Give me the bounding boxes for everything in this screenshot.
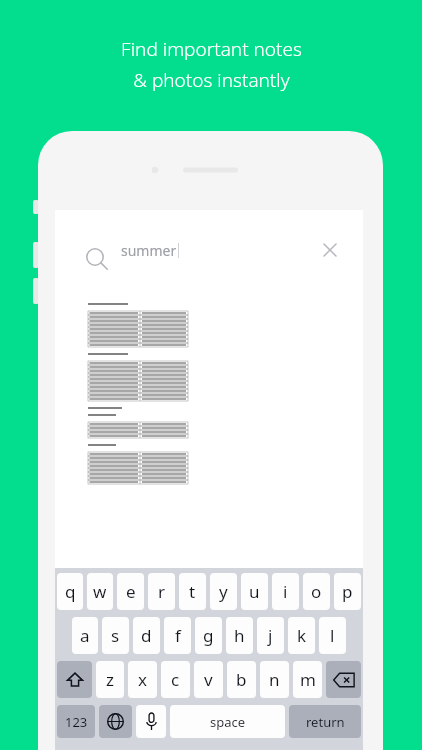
staticText: u <box>249 580 260 603</box>
button[interactable]: p <box>334 573 361 610</box>
button[interactable]: j <box>257 617 284 654</box>
button[interactable]: z <box>96 661 124 698</box>
staticText: b <box>236 668 247 691</box>
button[interactable]: w <box>87 573 113 610</box>
staticText: summer <box>121 241 177 260</box>
staticText: 123 <box>65 713 88 731</box>
staticText: space <box>210 713 246 731</box>
button[interactable]: x <box>128 661 157 698</box>
button[interactable]: Dictate <box>136 705 166 738</box>
button[interactable]: g <box>195 617 222 654</box>
button[interactable]: o <box>303 573 330 610</box>
button[interactable]: r <box>148 573 175 610</box>
button[interactable]: u <box>241 573 268 610</box>
staticText: k <box>297 624 307 647</box>
staticText: x <box>138 668 147 691</box>
button[interactable]: Delete <box>326 661 361 698</box>
staticText: i <box>283 580 288 603</box>
staticText: p <box>342 580 353 603</box>
button[interactable]: y <box>210 573 237 610</box>
button[interactable]: d <box>133 617 160 654</box>
button[interactable]: return <box>289 705 361 738</box>
staticText: f <box>175 624 181 647</box>
button[interactable]: Search <box>83 245 113 275</box>
button[interactable]: b <box>227 661 256 698</box>
staticText: h <box>234 624 245 647</box>
staticText: y <box>219 580 228 603</box>
button[interactable] <box>88 300 188 480</box>
staticText: v <box>204 668 213 691</box>
staticText: e <box>126 580 136 603</box>
staticText: w <box>93 580 107 603</box>
button[interactable]: space <box>170 705 285 738</box>
staticText: q <box>65 580 76 603</box>
staticText: & photos instantly <box>133 67 290 93</box>
staticText: c <box>171 668 180 691</box>
staticText: n <box>269 668 280 691</box>
button[interactable]: Shift <box>57 661 92 698</box>
button[interactable]: k <box>288 617 315 654</box>
staticText: return <box>306 713 345 731</box>
button[interactable]: i <box>272 573 299 610</box>
button[interactable]: 123 <box>57 705 95 738</box>
staticText: m <box>300 668 316 691</box>
button[interactable]: n <box>260 661 289 698</box>
button[interactable]: e <box>117 573 144 610</box>
button[interactable]: c <box>161 661 190 698</box>
staticText: g <box>203 624 214 647</box>
button[interactable]: Clear search <box>313 233 347 267</box>
staticText: Find important notes <box>121 36 302 62</box>
staticText: z <box>106 668 114 691</box>
button[interactable]: Change keyboard language <box>99 705 132 738</box>
staticText: l <box>330 624 335 647</box>
button[interactable]: t <box>179 573 206 610</box>
button[interactable]: l <box>319 617 346 654</box>
staticText: d <box>141 624 152 647</box>
button[interactable]: s <box>102 617 129 654</box>
staticText: o <box>311 580 322 603</box>
button[interactable]: m <box>293 661 322 698</box>
staticText: t <box>189 580 196 603</box>
button[interactable]: a <box>72 617 98 654</box>
staticText: r <box>158 580 166 603</box>
button[interactable]: v <box>194 661 223 698</box>
button[interactable]: q <box>57 573 83 610</box>
staticText: s <box>111 624 120 647</box>
staticText: a <box>80 624 90 647</box>
button[interactable]: h <box>226 617 253 654</box>
button[interactable]: f <box>164 617 191 654</box>
staticText: j <box>268 624 273 647</box>
